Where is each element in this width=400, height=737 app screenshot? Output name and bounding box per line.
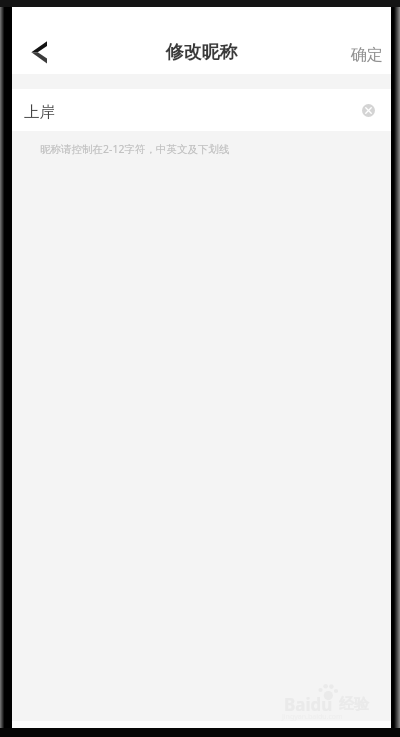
staticText: 修改昵称 [12, 41, 391, 64]
staticText: Baidu [284, 693, 333, 716]
button[interactable]: 确定 [342, 34, 391, 76]
staticText: 经验 [339, 695, 369, 714]
staticText: 上岸 [24, 102, 55, 122]
button[interactable]: Clear text [356, 98, 380, 122]
staticText: 确定 [351, 45, 383, 65]
button[interactable]: Back [15, 28, 63, 76]
staticText: jingyan.baidu.com [282, 712, 343, 722]
button[interactable]: Nickname input [12, 89, 391, 131]
staticText: 昵称请控制在2-12字符，中英文及下划线 [40, 142, 230, 156]
